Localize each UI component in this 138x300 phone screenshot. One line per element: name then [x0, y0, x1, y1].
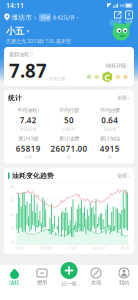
- staticText: 12: [10, 184, 14, 189]
- staticText: 平均行驶: [59, 107, 79, 114]
- button[interactable]: 记录: [125, 11, 133, 24]
- staticText: 65819: [16, 143, 41, 154]
- staticText: ?: [38, 108, 40, 113]
- button[interactable]: 95#: [39, 13, 79, 22]
- staticText: 6: [11, 212, 13, 217]
- staticText: 2021-02: [92, 246, 105, 250]
- staticText: 公里/天: [62, 126, 75, 131]
- staticText: 全部: [117, 95, 127, 101]
- staticText: ›: [34, 13, 36, 22]
- staticText: ›: [128, 94, 130, 101]
- staticText: 费用: [37, 279, 47, 286]
- staticText: C: [104, 71, 110, 83]
- staticText: 统计: [8, 94, 22, 102]
- button[interactable]: 记一笔: [60, 262, 77, 287]
- button[interactable]: 小五: [6, 25, 29, 37]
- staticText: 记一笔: [61, 280, 76, 287]
- staticText: ▾: [26, 28, 29, 34]
- staticText: 油耗变化趋势: [12, 172, 54, 180]
- staticText: 公里: [24, 155, 32, 160]
- staticText: 油耗: [9, 279, 19, 286]
- staticText: 升/百公里: [48, 76, 65, 81]
- staticText: 0.64: [101, 115, 118, 125]
- staticText: 平均油费: [100, 107, 120, 114]
- staticText: 元/公里: [103, 126, 116, 131]
- staticText: 最新油耗: [9, 51, 29, 58]
- staticText: 54: [119, 3, 123, 8]
- staticText: 发现: [91, 279, 101, 286]
- staticText: 14:11: [6, 1, 24, 10]
- staticText: ›: [77, 14, 79, 21]
- button[interactable]: 费用: [28, 268, 56, 286]
- staticText: 7.87: [9, 58, 47, 83]
- staticText: 累计油费: [59, 135, 79, 142]
- button[interactable]: 油耗: [0, 268, 28, 286]
- staticText: ›: [127, 62, 129, 69]
- staticText: 能耗评级: [106, 63, 126, 69]
- button[interactable]: 发现: [82, 268, 110, 286]
- staticText: 分享: [114, 19, 122, 24]
- staticText: 3: [11, 226, 13, 231]
- staticText: 五菱之光 2013款 1.0L 基本型: [6, 37, 71, 45]
- staticText: 11-06: [68, 246, 77, 250]
- staticText: 9: [11, 198, 13, 203]
- staticText: 潍坊市: [11, 13, 32, 22]
- staticText: 平均油耗: [17, 107, 37, 114]
- staticText: 元: [67, 155, 71, 160]
- button[interactable]: 全部: [117, 94, 130, 101]
- staticText: 升: [108, 155, 112, 160]
- staticText: 全部: [117, 172, 127, 179]
- button[interactable]: 能耗评级: [106, 62, 129, 69]
- button[interactable]: 我的: [110, 268, 138, 286]
- button[interactable]: 分享: [114, 11, 122, 24]
- staticText: 小五: [6, 25, 24, 37]
- button[interactable]: 全部: [117, 172, 130, 179]
- staticText: 0: [11, 239, 13, 245]
- staticText: 2020-08: [39, 246, 52, 250]
- staticText: 我的: [119, 279, 129, 286]
- staticText: 8.42元/升: [53, 14, 75, 21]
- staticText: 7.42: [20, 115, 37, 125]
- staticText: 累计加油: [100, 135, 120, 142]
- staticText: 50: [64, 115, 74, 125]
- staticText: 4915: [100, 143, 120, 154]
- staticText: 05-04: [121, 246, 130, 250]
- staticText: ›: [128, 172, 130, 179]
- button[interactable]: 潍坊市: [4, 13, 36, 22]
- staticText: 升/百公里: [20, 126, 37, 131]
- staticText: 记录: [125, 19, 133, 24]
- staticText: 26071.00: [50, 143, 87, 154]
- staticText: 95#: [40, 14, 49, 21]
- staticText: ?: [30, 51, 32, 58]
- staticText: 02-03: [15, 246, 24, 250]
- staticText: 累计行驶: [18, 135, 38, 142]
